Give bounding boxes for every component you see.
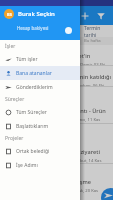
staticText: Projeler xyxy=(5,135,24,142)
button[interactable]: Tüm Süreçler xyxy=(0,105,80,119)
button[interactable]: Filter xyxy=(93,8,109,24)
staticText: Süreçler xyxy=(5,96,25,103)
staticText: Burak Seçkin xyxy=(18,10,55,18)
button[interactable]: Ayşe'nin katıldığı xyxy=(0,66,113,86)
button[interactable]: Other account xyxy=(65,27,72,34)
staticText: Hesap bakiyesi xyxy=(17,25,49,31)
button[interactable]: Tüm işler xyxy=(0,52,80,66)
staticText: Toplantı - Ürün xyxy=(66,107,106,115)
staticText: Başlattıklarım xyxy=(16,123,49,130)
staticText: Bana atananlar xyxy=(16,70,52,77)
staticText: Ayşe'nin katıldığı xyxy=(66,73,112,81)
button[interactable]: İşe Adımı xyxy=(0,158,80,172)
staticText: Ayşe Sayhan, 06 Eki xyxy=(66,83,105,86)
button[interactable]: Saha ziyareti yapıldı xyxy=(0,124,113,163)
button[interactable]: Ortak belediği xyxy=(0,144,80,158)
staticText: Termin tarihi xyxy=(84,25,113,37)
staticText: Deniz Ak, 20 Kas xyxy=(66,188,99,194)
button[interactable]: Sözleşme yenileme xyxy=(0,164,113,200)
staticText: Sözleşme yenileme xyxy=(66,178,112,186)
staticText: Saha ziyareti yapıldı xyxy=(66,148,112,156)
staticText: Efe Korkut, 14 Kas xyxy=(66,158,102,163)
button[interactable]: Termin tarihi xyxy=(0,25,113,37)
staticText: Tüm Süreçler xyxy=(16,109,47,116)
staticText: Ahmet'in tanıdığı xyxy=(66,52,112,60)
button[interactable]: Bana atananlar xyxy=(0,66,80,80)
staticText: İşler xyxy=(5,43,16,50)
staticText: Ahmet Demir, 03 Eki xyxy=(66,62,106,65)
button[interactable]: Ahmet'in tanıdığı xyxy=(0,45,113,65)
staticText: BS xyxy=(7,12,12,17)
staticText: Gönderdiklerim xyxy=(16,84,53,91)
button[interactable]: Send xyxy=(101,188,113,200)
staticText: Can Yazıcı, 11 Kas xyxy=(66,117,101,123)
button[interactable]: Gönderdiklerim xyxy=(0,80,80,94)
button[interactable]: Toplantı - Ürün xyxy=(0,87,113,123)
button[interactable]: Başlattıklarım xyxy=(0,119,80,133)
staticText: Ortak belediği xyxy=(16,148,50,155)
button[interactable]: Account xyxy=(4,9,14,19)
staticText: İşe Adımı xyxy=(16,162,38,169)
button[interactable]: Add xyxy=(77,8,93,24)
staticText: Tüm işler xyxy=(16,56,38,63)
staticText: Bu hafta xyxy=(84,38,101,44)
